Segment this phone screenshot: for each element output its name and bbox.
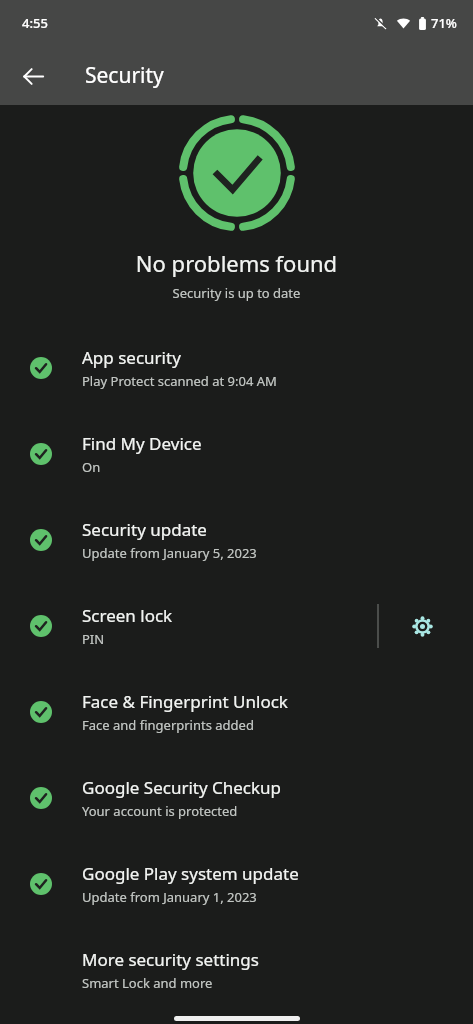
button[interactable]: Google Play system update (0, 841, 473, 927)
staticText: Smart Lock and more (82, 974, 213, 992)
button[interactable]: Security update (0, 497, 473, 583)
staticText: Face & Fingerprint Unlock (82, 690, 288, 713)
staticText: 4:55 (22, 14, 48, 32)
staticText: More security settings (82, 948, 259, 971)
staticText: No problems found (0, 248, 473, 278)
button[interactable]: Back (10, 53, 56, 99)
staticText: Your account is protected (82, 802, 238, 820)
staticText: 71% (431, 14, 457, 32)
button[interactable]: Screen lock settings (399, 603, 445, 649)
staticText: Find My Device (82, 432, 202, 455)
staticText: App security (82, 346, 181, 369)
button[interactable]: Face & Fingerprint Unlock (0, 669, 473, 755)
button[interactable]: More security settings (0, 927, 473, 1013)
button[interactable]: Screen lock (0, 583, 473, 669)
button[interactable]: App security (0, 325, 473, 411)
button[interactable]: Google Security Checkup (0, 755, 473, 841)
staticText: On (82, 458, 101, 476)
button[interactable]: Find My Device (0, 411, 473, 497)
staticText: Google Play system update (82, 862, 299, 885)
staticText: Security (85, 61, 164, 90)
staticText: Security update (82, 518, 207, 541)
staticText: Face and fingerprints added (82, 716, 254, 734)
staticText: Update from January 5, 2023 (82, 544, 257, 562)
staticText: PIN (82, 630, 105, 648)
staticText: Google Security Checkup (82, 776, 282, 799)
staticText: Update from January 1, 2023 (82, 888, 257, 906)
staticText: Screen lock (82, 604, 173, 627)
staticText: Play Protect scanned at 9:04 AM (82, 372, 277, 390)
staticText: Security is up to date (0, 284, 473, 302)
